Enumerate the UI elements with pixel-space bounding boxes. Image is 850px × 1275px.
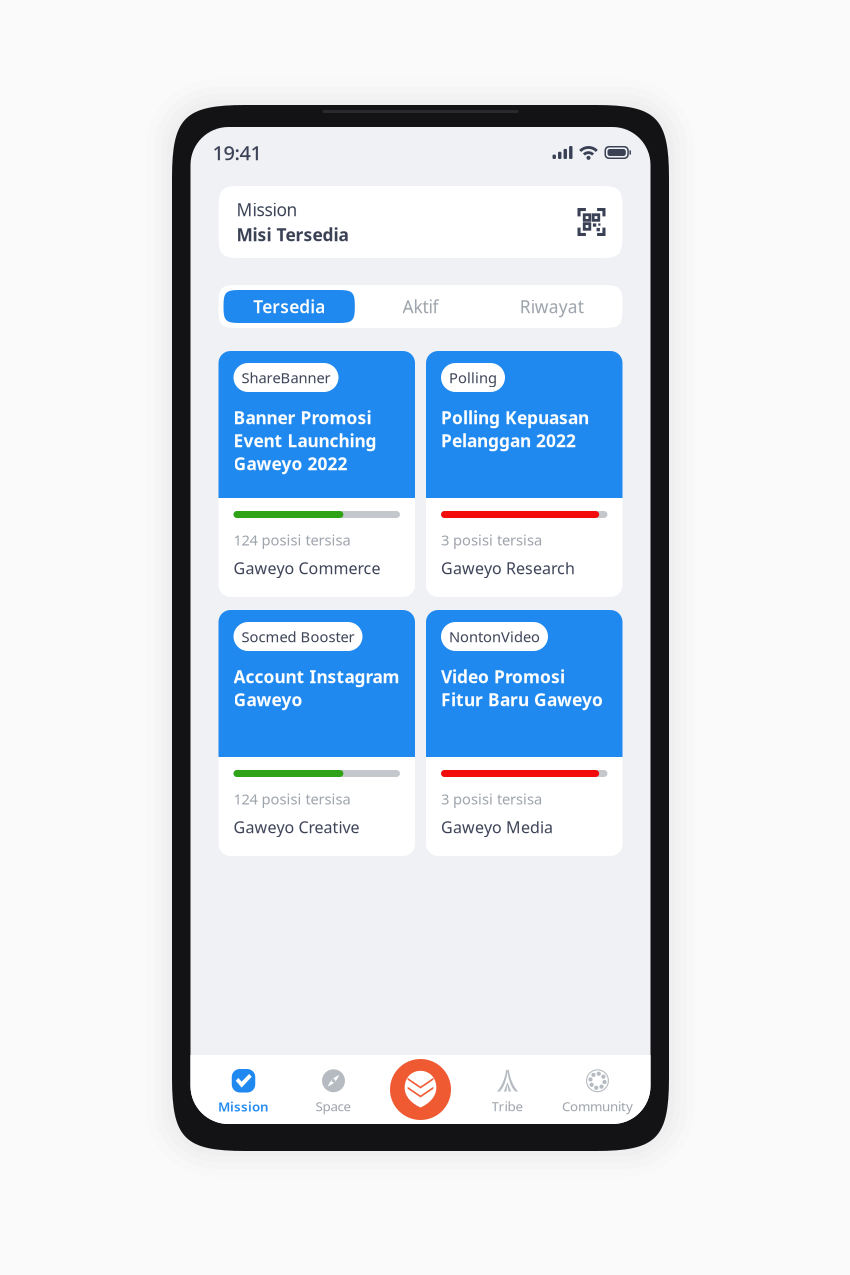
staticText: Gaweyo Commerce xyxy=(233,557,380,579)
staticText: Space xyxy=(315,1097,351,1115)
staticText: 3 posisi tersisa xyxy=(441,789,542,808)
staticText: ShareBanner xyxy=(241,368,330,387)
staticText: 124 posisi tersisa xyxy=(233,789,350,808)
staticText: Riwayat xyxy=(520,295,584,318)
button[interactable]: Space xyxy=(288,1055,378,1115)
staticText: Gaweyo xyxy=(233,688,302,711)
staticText: Gaweyo Media xyxy=(441,816,553,838)
staticText: Gaweyo 2022 xyxy=(233,452,347,475)
button[interactable]: Aktif xyxy=(355,290,486,323)
staticText: Video Promosi xyxy=(441,665,565,688)
staticText: Socmed Booster xyxy=(241,627,354,646)
button[interactable]: Mission xyxy=(218,186,622,258)
staticText: Tersedia xyxy=(253,295,325,318)
button[interactable]: ShareBanner xyxy=(218,351,415,597)
button[interactable]: Polling xyxy=(426,351,622,597)
staticText: Misi Tersedia xyxy=(236,223,348,246)
staticText: Pelanggan 2022 xyxy=(441,429,576,452)
staticText: Community xyxy=(562,1097,633,1115)
staticText: Polling xyxy=(449,368,497,387)
staticText: Mission xyxy=(218,1097,269,1115)
staticText: Account Instagram xyxy=(233,665,399,688)
staticText: Polling Kepuasan xyxy=(441,406,589,429)
staticText: Gaweyo Creative xyxy=(233,816,359,838)
button[interactable]: Tersedia xyxy=(223,290,355,323)
staticText: 3 posisi tersisa xyxy=(441,530,542,549)
staticText: NontonVideo xyxy=(449,627,540,646)
staticText: Banner Promosi xyxy=(233,406,371,429)
staticText: Tribe xyxy=(491,1097,523,1115)
staticText: 124 posisi tersisa xyxy=(233,530,350,549)
button[interactable]: Mission xyxy=(198,1055,288,1115)
button[interactable]: NontonVideo xyxy=(426,610,622,856)
button[interactable]: Community xyxy=(552,1055,642,1115)
button[interactable]: Create mission xyxy=(390,1059,451,1120)
staticText: 19:41 xyxy=(212,139,261,166)
staticText: Fitur Baru Gaweyo xyxy=(441,688,603,711)
staticText: Mission xyxy=(236,198,297,221)
button[interactable]: Tribe xyxy=(462,1055,552,1115)
button[interactable]: Socmed Booster xyxy=(218,610,415,856)
staticText: Aktif xyxy=(402,295,438,318)
staticText: Event Launching xyxy=(233,429,376,452)
button[interactable]: Riwayat xyxy=(486,290,617,323)
staticText: Gaweyo Research xyxy=(441,557,575,579)
